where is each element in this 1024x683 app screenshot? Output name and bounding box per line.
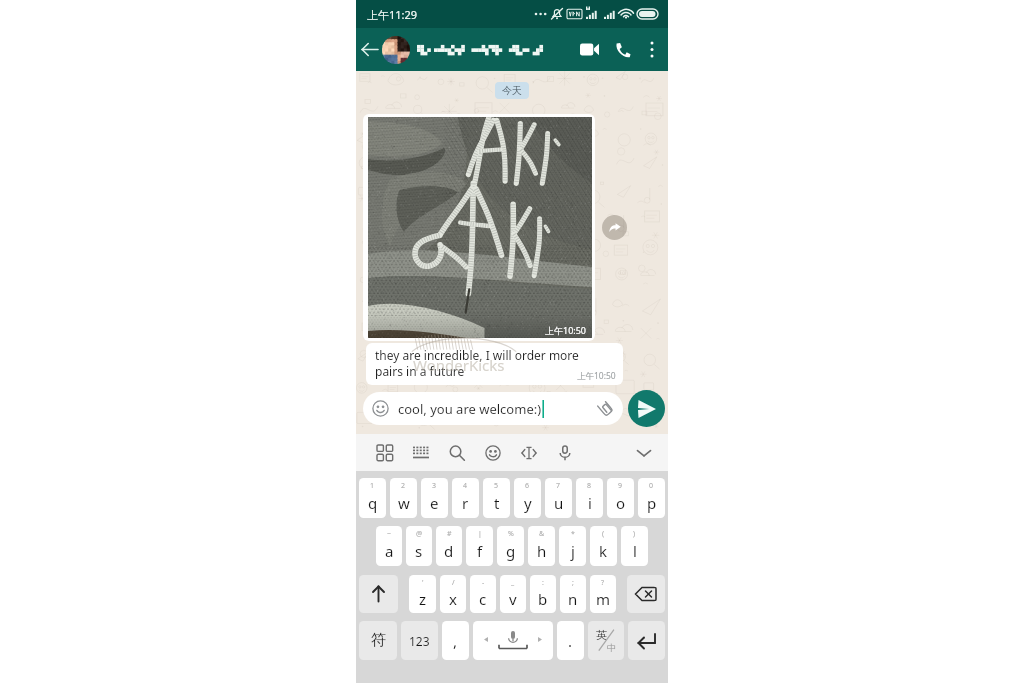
staticText: b <box>538 589 548 609</box>
staticText: 上午10:50 <box>545 324 587 336</box>
button[interactable]: & <box>528 526 555 566</box>
button[interactable]: Send <box>628 390 665 427</box>
button[interactable]: ) <box>621 526 648 566</box>
staticText: e <box>430 493 439 513</box>
button[interactable]: _ <box>500 575 526 613</box>
staticText: # <box>447 529 452 539</box>
staticText: g <box>506 541 516 561</box>
staticText: ' <box>422 578 424 588</box>
staticText: . <box>568 631 573 651</box>
staticText: ) <box>633 529 636 539</box>
staticText: they are incredible, I will order more p… <box>375 347 579 379</box>
button[interactable]: Voice call <box>606 28 639 71</box>
button[interactable]: | <box>466 526 493 566</box>
staticText: i <box>588 493 592 513</box>
staticText: ( <box>602 529 605 539</box>
button[interactable]: - <box>470 575 496 613</box>
staticText: & <box>539 529 545 539</box>
button[interactable]: 0 <box>638 478 665 518</box>
button[interactable]: 5 <box>483 478 510 518</box>
button[interactable]: @ <box>406 526 432 566</box>
button[interactable]: ~ <box>376 526 402 566</box>
button[interactable]: Language <box>588 621 624 660</box>
staticText: 英 <box>596 628 607 642</box>
button[interactable]: More options <box>639 28 665 71</box>
staticText: : <box>542 578 544 588</box>
button[interactable]: Forward <box>602 215 627 240</box>
staticText: | <box>478 529 482 539</box>
button[interactable]: Search <box>439 435 475 471</box>
staticText: * <box>571 529 575 539</box>
staticText: 9 <box>618 481 623 491</box>
button[interactable]: ' <box>409 575 436 613</box>
staticText: v <box>509 589 517 609</box>
button[interactable]: Contact photo <box>382 36 410 64</box>
button[interactable]: 2 <box>390 478 417 518</box>
staticText: 8 <box>587 481 592 491</box>
button[interactable]: # <box>436 526 462 566</box>
button[interactable]: / <box>440 575 466 613</box>
staticText: h <box>537 541 547 561</box>
staticText: c <box>479 589 487 609</box>
staticText: 3 <box>432 481 437 491</box>
button[interactable]: % <box>497 526 524 566</box>
staticText: 7 <box>556 481 561 491</box>
staticText: cool, you are welcome:) <box>398 400 542 418</box>
button[interactable]: 符 <box>359 621 397 660</box>
button[interactable]: 1 <box>359 478 386 518</box>
button[interactable]: they are incredible, I will order more p… <box>366 343 623 385</box>
staticText: d <box>444 541 454 561</box>
button[interactable]: Back <box>356 28 382 71</box>
staticText: ? <box>601 578 605 588</box>
button[interactable]: ( <box>590 526 617 566</box>
button[interactable]: 123 <box>401 621 438 660</box>
button[interactable]: 上午10:50 <box>363 114 595 341</box>
staticText: 6 <box>525 481 530 491</box>
button[interactable]: Video call <box>573 28 606 71</box>
button[interactable]: 7 <box>545 478 572 518</box>
staticText: m <box>596 589 611 609</box>
staticText: w <box>398 493 410 513</box>
button[interactable]: Backspace <box>627 575 665 613</box>
staticText: 2 <box>401 481 406 491</box>
staticText: k <box>599 541 608 561</box>
staticText: n <box>568 589 578 609</box>
button[interactable]: 3 <box>421 478 448 518</box>
staticText: , <box>453 631 458 651</box>
button[interactable]: Sticker panel <box>367 435 403 471</box>
button[interactable]: Emoji <box>475 435 511 471</box>
staticText: z <box>419 589 427 609</box>
button[interactable]: Text edit <box>511 435 547 471</box>
button[interactable]: Shift <box>359 575 398 613</box>
button[interactable]: : <box>530 575 556 613</box>
button[interactable]: , <box>442 621 469 660</box>
staticText: 符 <box>371 631 386 650</box>
button[interactable]: Keyboard <box>403 435 439 471</box>
button[interactable]: . <box>557 621 584 660</box>
button[interactable]: * <box>559 526 586 566</box>
button[interactable]: 4 <box>452 478 479 518</box>
staticText: u <box>554 493 564 513</box>
staticText: ~ <box>387 529 392 539</box>
staticText: t <box>494 493 500 513</box>
staticText: / <box>452 578 455 588</box>
button[interactable]: cool, you are welcome:) <box>363 392 623 425</box>
staticText: p <box>647 493 657 513</box>
button[interactable]: 9 <box>607 478 634 518</box>
button[interactable]: Enter <box>628 621 665 660</box>
staticText: s <box>415 541 423 561</box>
button[interactable]: Voice input <box>547 435 583 471</box>
staticText: 上午10:50 <box>577 370 616 382</box>
button[interactable]: 6 <box>514 478 541 518</box>
staticText: 中 <box>607 642 616 653</box>
staticText: r <box>462 493 469 513</box>
staticText: 上午11:29 <box>367 7 418 22</box>
button[interactable]: ; <box>560 575 586 613</box>
button[interactable]: Space <box>473 621 553 660</box>
button[interactable]: Hide keyboard <box>626 435 662 471</box>
staticText: % <box>508 529 514 539</box>
button[interactable]: ? <box>590 575 616 613</box>
staticText: ; <box>572 578 574 588</box>
button[interactable]: 8 <box>576 478 603 518</box>
staticText: _ <box>511 578 515 588</box>
